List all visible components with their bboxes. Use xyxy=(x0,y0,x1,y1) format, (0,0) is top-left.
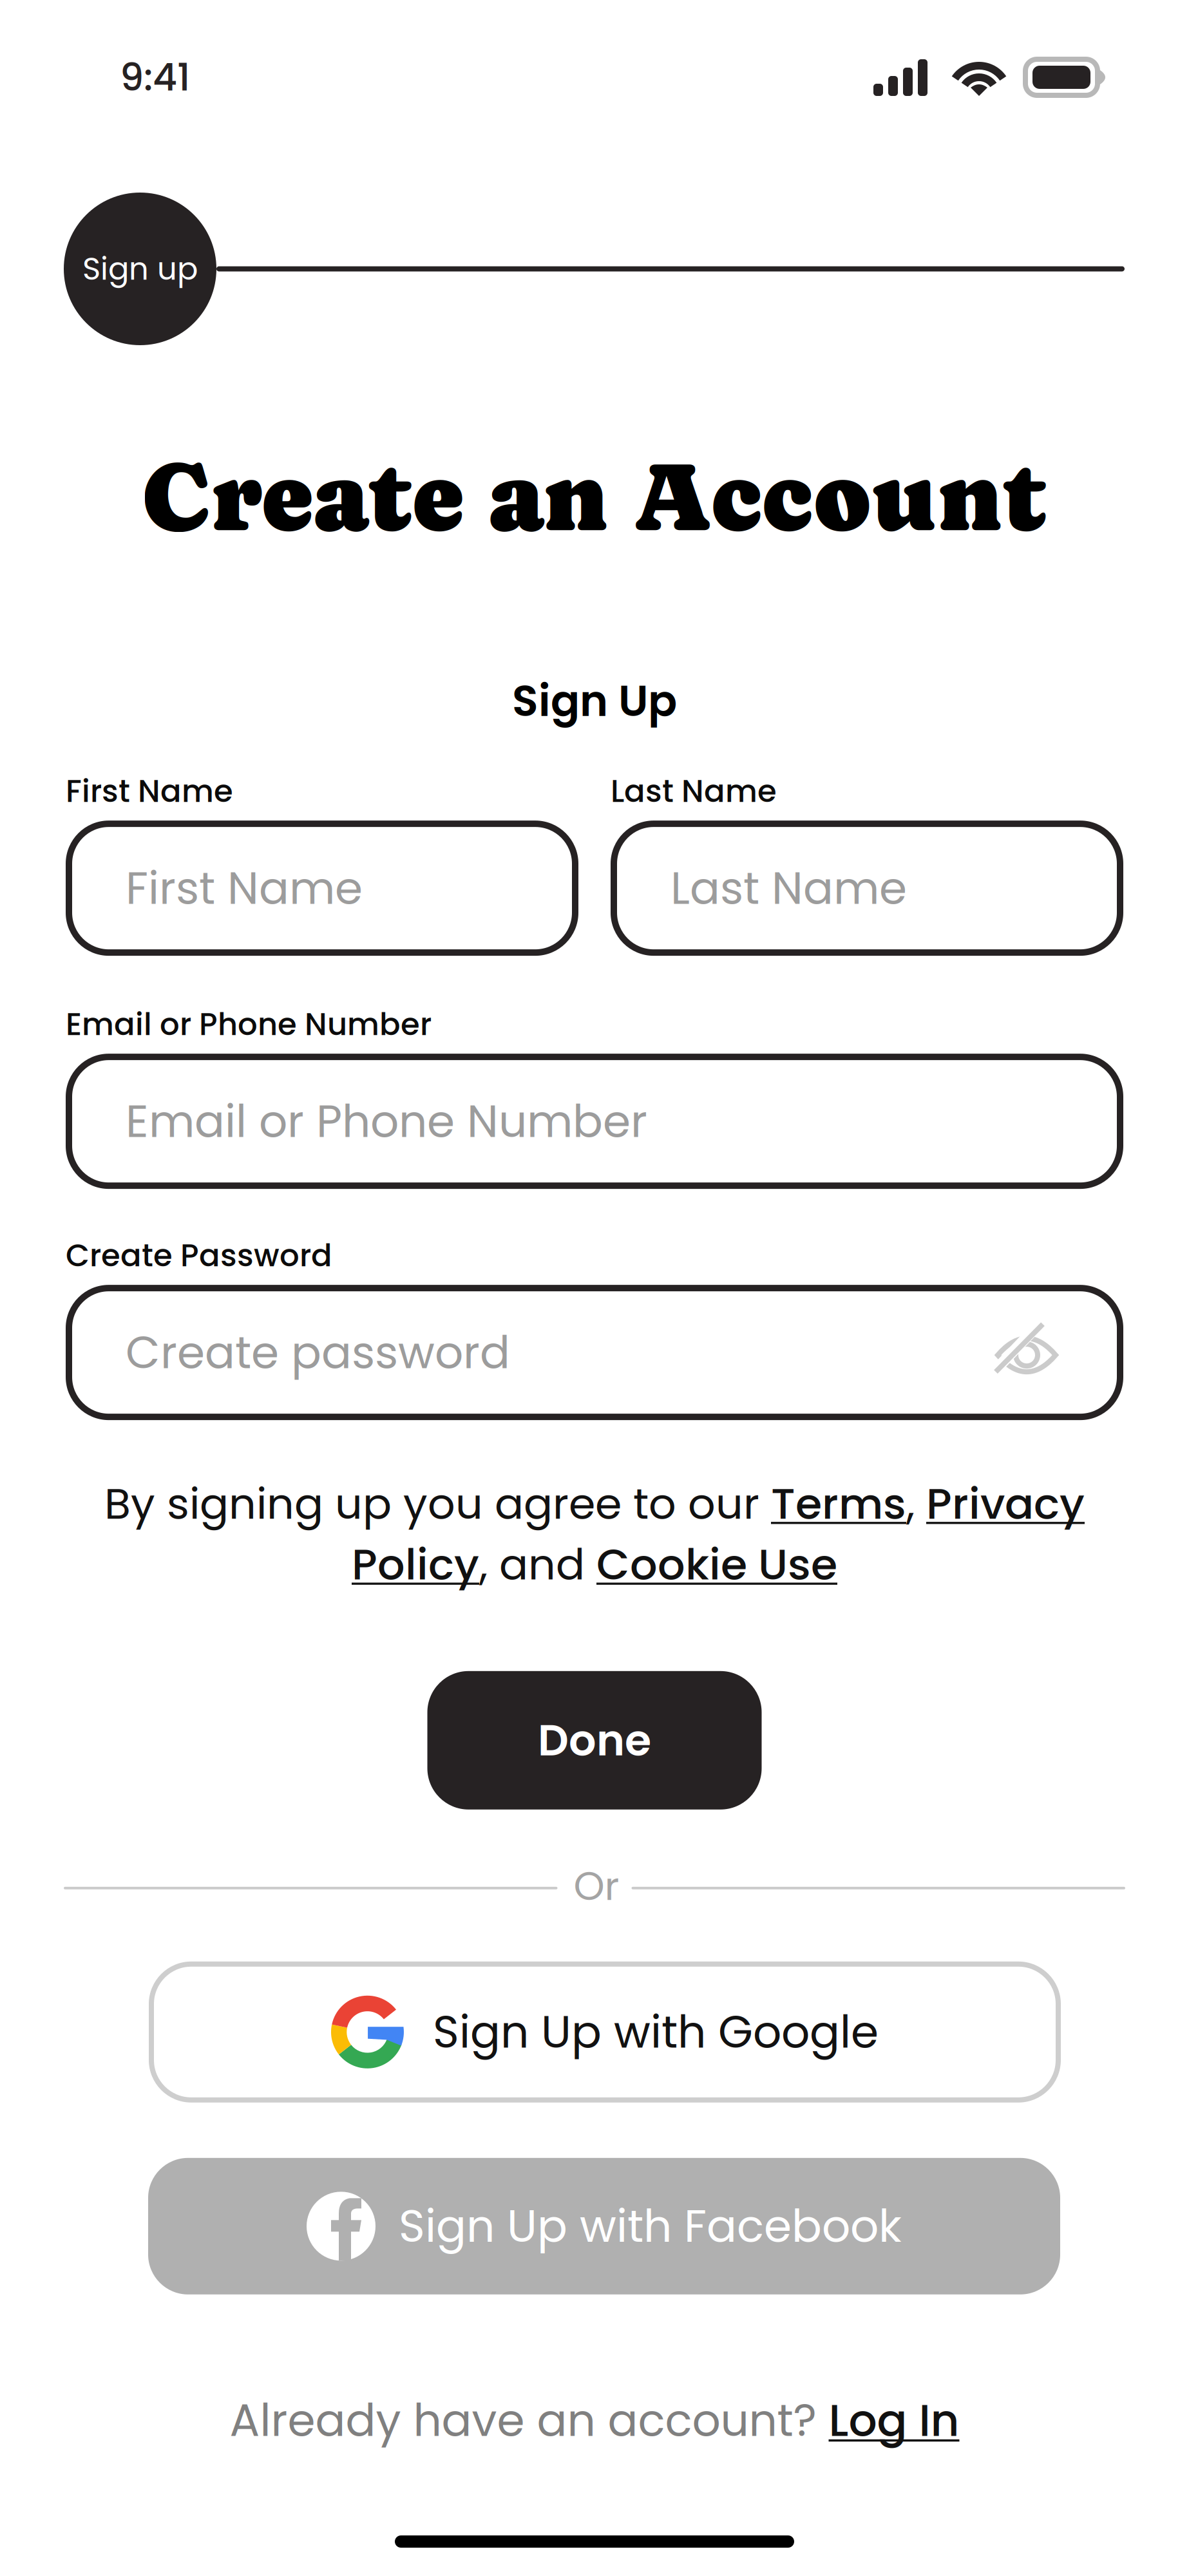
staticText: Sign Up with Google xyxy=(433,2001,879,2063)
staticText: Sign Up with Facebook xyxy=(399,2195,902,2257)
staticText: Create Password xyxy=(66,1234,332,1277)
staticText: Already have an account? xyxy=(230,2389,829,2452)
staticText: Policy xyxy=(352,1534,479,1594)
button[interactable]: Already have an account? xyxy=(230,2389,959,2452)
staticText: Create an Account xyxy=(141,441,1048,552)
staticText: Log In xyxy=(829,2389,959,2452)
staticText: , xyxy=(906,1474,926,1534)
staticText: , and xyxy=(479,1534,596,1594)
staticText: Last Name xyxy=(611,770,777,813)
button[interactable]: Sign Up with Google xyxy=(151,1964,1058,2100)
staticText: Terms xyxy=(771,1474,906,1534)
staticText: Email or Phone Number xyxy=(126,1090,647,1153)
staticText: First Name xyxy=(66,770,233,813)
staticText: Or xyxy=(574,1859,619,1914)
staticText: First Name xyxy=(126,857,363,919)
staticText: Sign Up xyxy=(512,671,677,731)
staticText: Create password xyxy=(126,1321,510,1384)
staticText: Privacy xyxy=(926,1474,1085,1534)
staticText: By signing up you agree to our xyxy=(104,1474,771,1534)
button[interactable]: Done xyxy=(427,1671,762,1810)
staticText: Sign up xyxy=(82,247,198,291)
staticText: 9:41 xyxy=(120,51,191,104)
staticText: Done xyxy=(538,1710,651,1770)
staticText: Email or Phone Number xyxy=(66,1003,432,1046)
button[interactable]: Sign Up with Facebook xyxy=(148,2158,1060,2294)
staticText: Last Name xyxy=(671,857,907,919)
staticText: Cookie Use xyxy=(596,1534,837,1594)
